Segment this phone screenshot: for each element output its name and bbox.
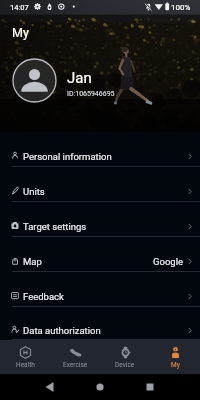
staticText: Device	[115, 361, 135, 369]
staticText: ID:1065946695	[67, 90, 115, 98]
staticText: Exercise	[63, 361, 88, 369]
button[interactable]: Data authorization	[0, 307, 200, 340]
staticText: Map	[23, 256, 42, 267]
staticText: Jan	[67, 69, 92, 87]
staticText: 14:07	[10, 3, 29, 12]
staticText: Units	[23, 186, 45, 197]
staticText: Personal information	[23, 151, 112, 162]
button[interactable]: Map	[0, 237, 200, 272]
button[interactable]: Personal information	[0, 132, 200, 167]
staticText: My	[171, 361, 180, 369]
button[interactable]: Target settings	[0, 202, 200, 237]
button[interactable]: Device	[100, 340, 150, 374]
staticText: Data authorization	[23, 325, 101, 336]
staticText: 100%	[171, 3, 191, 12]
staticText: Google	[153, 256, 183, 267]
button[interactable]: Feedback	[0, 272, 200, 307]
staticText: Health	[16, 361, 35, 369]
staticText: My	[12, 25, 29, 40]
button[interactable]: Units	[0, 167, 200, 202]
button[interactable]: Health	[0, 340, 50, 374]
staticText: Feedback	[23, 291, 64, 302]
button[interactable]: Exercise	[50, 340, 100, 374]
staticText: Target settings	[23, 221, 87, 232]
button[interactable]: My	[150, 340, 200, 374]
